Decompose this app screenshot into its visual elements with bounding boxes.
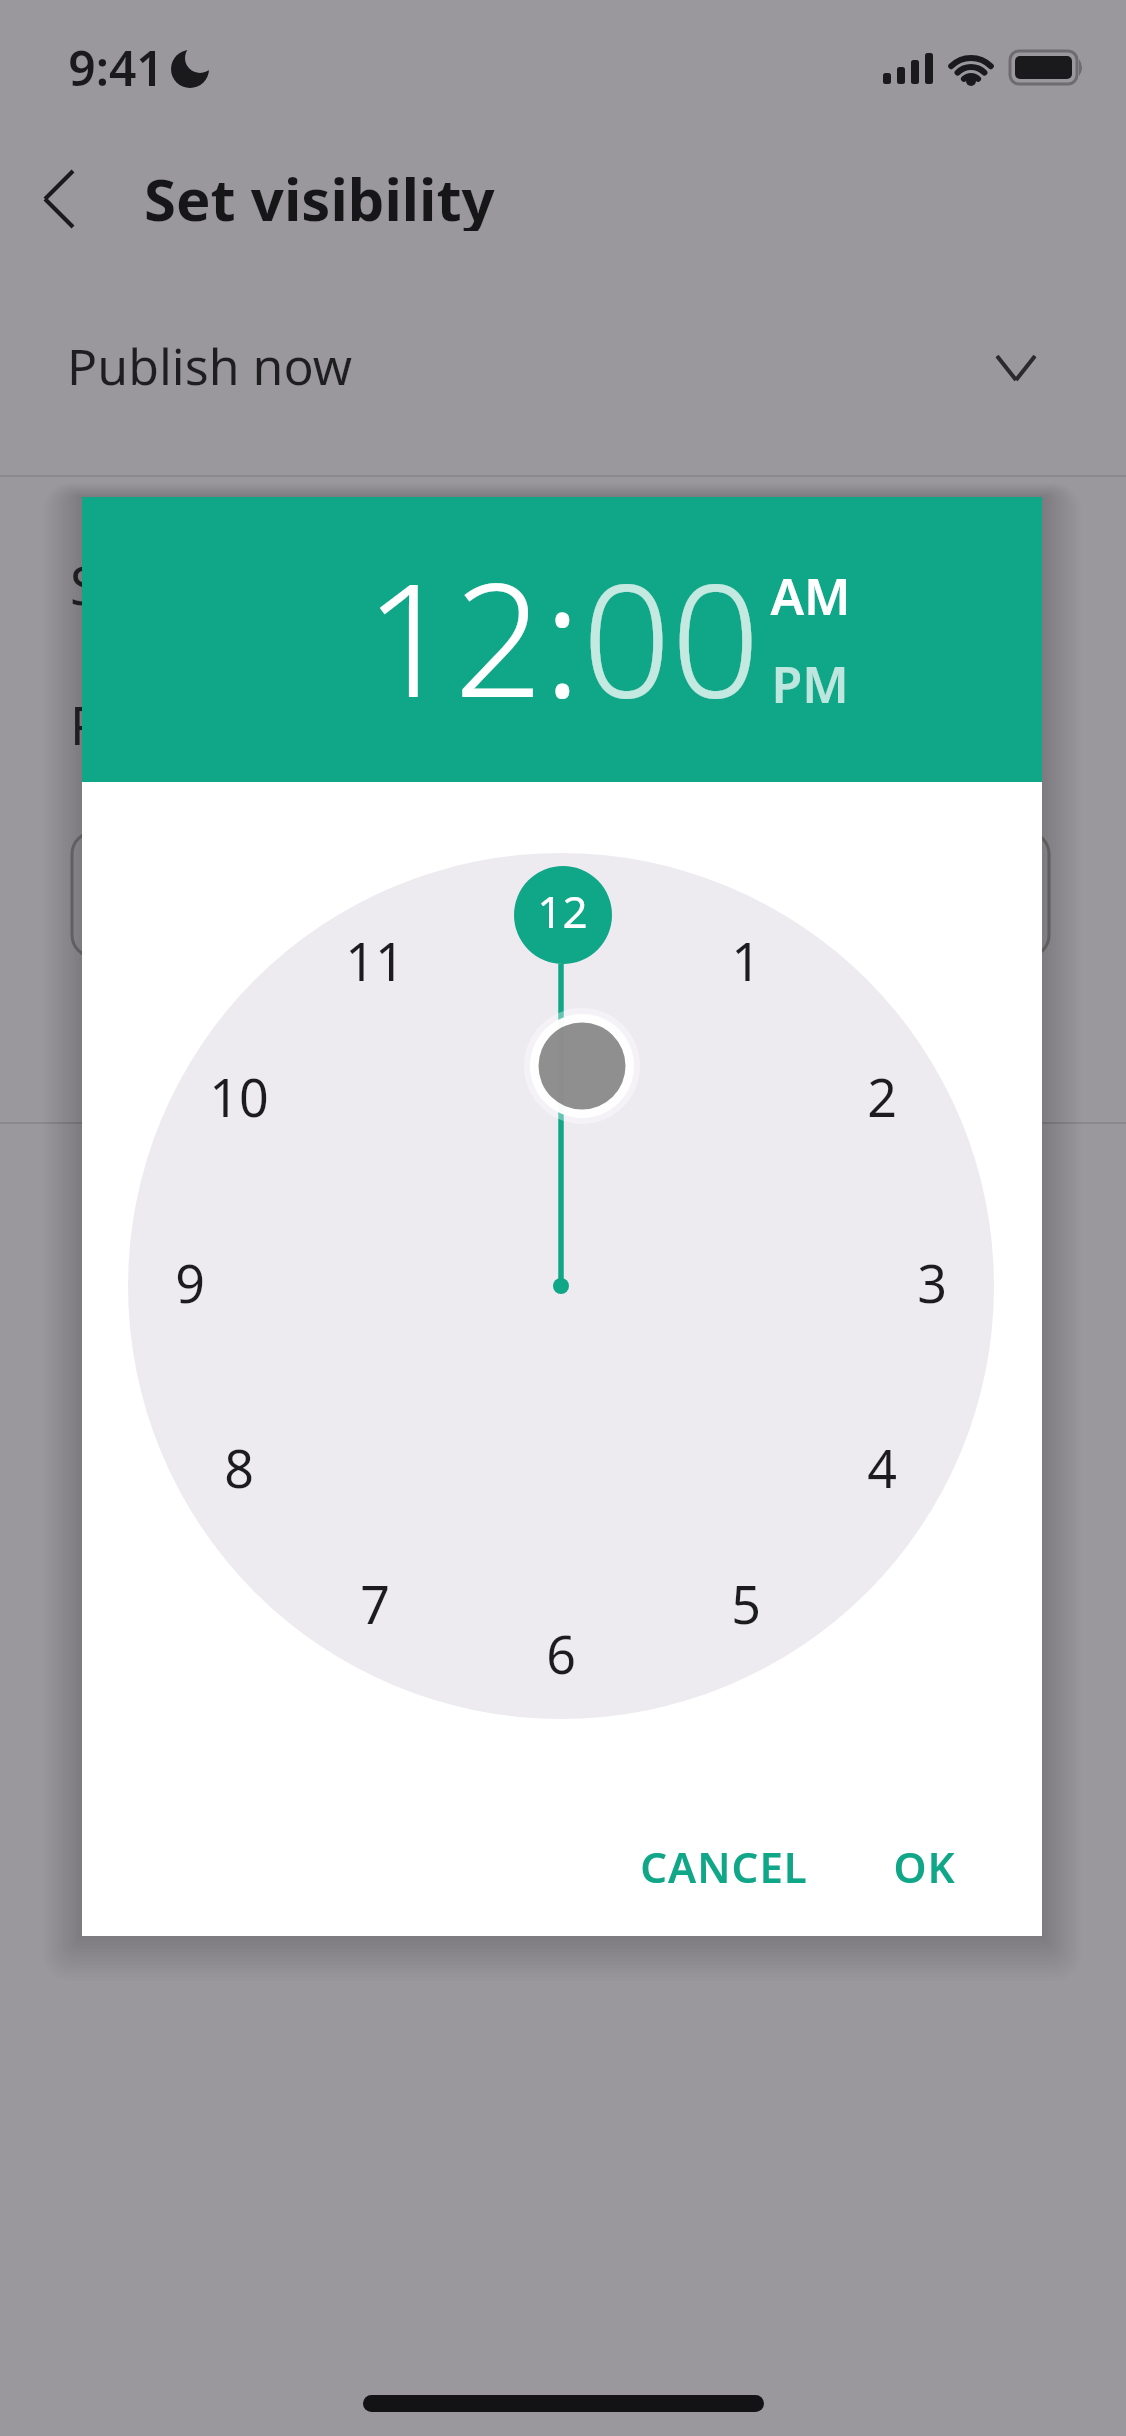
staticText: 00: [582, 530, 761, 742]
staticText: 12:: [365, 530, 582, 742]
staticText: 8: [224, 1432, 254, 1503]
staticText: 3: [917, 1247, 947, 1318]
button[interactable]: [0, 310, 1126, 420]
button[interactable]: CANCEL: [614, 1811, 834, 1921]
staticText: 9:41: [68, 35, 164, 100]
button[interactable]: [44, 168, 104, 230]
staticText: 11: [345, 925, 405, 996]
staticText: 4: [867, 1432, 897, 1503]
staticText: 12: [537, 881, 588, 941]
staticText: AM: [770, 562, 851, 630]
staticText: 7: [360, 1568, 390, 1639]
staticText: Schedule: [70, 549, 292, 620]
staticText: 10: [209, 1061, 269, 1132]
button[interactable]: PM: [730, 644, 890, 724]
staticText: 5: [731, 1568, 761, 1639]
staticText: OK: [893, 1838, 956, 1895]
staticText: 9: [175, 1247, 205, 1318]
staticText: PM: [771, 650, 849, 718]
staticText: 1: [731, 925, 761, 996]
staticText: Publish now: [67, 332, 352, 400]
button[interactable]: AM: [730, 556, 890, 636]
button[interactable]: OK: [854, 1811, 994, 1921]
staticText: Set visibility: [144, 159, 495, 231]
staticText: Publish on: [70, 689, 327, 760]
staticText: CANCEL: [640, 1838, 808, 1895]
staticText: 6: [546, 1618, 576, 1689]
staticText: 2: [867, 1061, 897, 1132]
